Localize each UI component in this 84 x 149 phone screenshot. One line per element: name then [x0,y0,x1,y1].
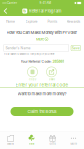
button[interactable]: Share [46,67,56,81]
staticText: Points [47,19,57,23]
staticText: Save [72,46,80,50]
button[interactable]: Points [42,16,63,27]
staticText: fy [23,9,26,13]
staticText: Enter your referral code [15,82,68,88]
staticText: Wallet [7,142,14,145]
button[interactable]: Explore [21,16,42,27]
staticText: Home [6,19,15,23]
button[interactable]: Refer [21,131,42,149]
staticText: Your name is shown to the people you ref… [3,53,54,56]
staticText: More [36,37,44,42]
staticText: Explore [25,19,37,23]
staticText: Claim the Bonus [27,109,56,114]
staticText: 9:41 AM [40,1,52,5]
staticText: Refer [28,142,34,145]
staticText: Copy [29,78,36,81]
staticText: Gifts [49,142,55,145]
staticText: 285861 [52,59,63,64]
button[interactable]: Enter your referral code [0,83,84,87]
button[interactable]: More [63,131,84,149]
button[interactable]: Rewards [63,16,84,27]
staticText: Your Referral Code: [20,59,51,64]
button[interactable]: Home [0,16,21,27]
staticText: Rewards [66,19,80,23]
staticText: Want to make more money? [17,91,66,96]
staticText: Share [48,78,54,81]
button[interactable]: More [36,37,48,41]
staticText: How You Can Make Money with FYVoler [6,30,77,35]
button[interactable]: Back [0,6,11,16]
staticText: Sender's Name [5,46,30,50]
staticText: More [70,142,76,145]
button[interactable]: Wallet [0,131,21,149]
staticText: Carrier [7,1,17,5]
button[interactable]: Copy [27,67,37,81]
button[interactable]: Save [71,45,80,51]
button[interactable]: Claim the Bonus [10,107,73,116]
button[interactable]: Gifts [42,131,63,149]
staticText: Referral Program [29,8,62,13]
